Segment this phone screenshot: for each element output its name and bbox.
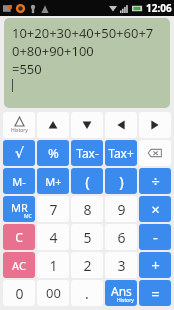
staticText: 8 [83, 200, 92, 219]
button[interactable]: = [139, 280, 171, 306]
staticText: 0+80+90+100 [12, 42, 94, 60]
button[interactable]: Ans [105, 280, 137, 306]
staticText: 1 [49, 256, 58, 275]
staticText: Tax- [76, 145, 99, 161]
button[interactable]: Up [37, 112, 69, 138]
button[interactable]: 7 [37, 196, 69, 222]
staticText: . [85, 284, 89, 303]
staticText: √ [15, 145, 24, 161]
button[interactable]: History [3, 112, 35, 138]
staticText: History [11, 127, 28, 134]
staticText: ÷ [151, 171, 160, 191]
staticText: 3 [117, 256, 126, 275]
staticText: 6 [117, 228, 126, 247]
button[interactable]: 3 [105, 252, 137, 278]
staticText: % [48, 144, 59, 162]
staticText: 10+20+30+40+50+60+7 [12, 24, 154, 42]
button[interactable]: 0 [3, 280, 35, 306]
button[interactable]: √ [3, 140, 35, 166]
button[interactable]: 1 [37, 252, 69, 278]
button[interactable]: AC [3, 252, 35, 278]
staticText: ) [119, 171, 124, 191]
button[interactable]: C [3, 224, 35, 250]
staticText: =550 [12, 60, 42, 78]
button[interactable]: 6 [105, 224, 137, 250]
staticText: MC [24, 213, 32, 220]
staticText: 4 [49, 228, 58, 247]
staticText: 0 [15, 284, 24, 303]
button[interactable]: M- [3, 168, 35, 194]
button[interactable]: Left [105, 112, 137, 138]
button[interactable]: Down [71, 112, 103, 138]
button[interactable]: Backspace [139, 140, 171, 166]
staticText: M- [12, 174, 26, 189]
staticText: Tax+ [108, 145, 134, 161]
staticText: ( [85, 171, 90, 191]
staticText: 5 [83, 228, 92, 247]
button[interactable]: + [139, 252, 171, 278]
button[interactable]: 00 [37, 280, 69, 306]
button[interactable]: × [139, 196, 171, 222]
button[interactable]: % [37, 140, 69, 166]
button[interactable]: 5 [71, 224, 103, 250]
button[interactable]: Right [139, 112, 171, 138]
button[interactable]: ( [71, 168, 103, 194]
staticText: 12:06 [146, 1, 172, 15]
staticText: + [151, 255, 160, 275]
staticText: 2 [83, 256, 92, 275]
staticText: History [117, 297, 134, 304]
staticText: 9 [117, 200, 126, 219]
staticText: MR [11, 200, 28, 215]
staticText: 7 [49, 200, 58, 219]
staticText: = [151, 283, 160, 303]
staticText: AC [12, 258, 26, 273]
button[interactable]: 4 [37, 224, 69, 250]
button[interactable]: - [139, 224, 171, 250]
button[interactable]: 9 [105, 196, 137, 222]
button[interactable]: 2 [71, 252, 103, 278]
button[interactable]: 10+20+30+40+50+60+7 [4, 18, 170, 108]
staticText: - [153, 227, 158, 247]
staticText: 00 [46, 284, 61, 302]
button[interactable]: MR [3, 196, 35, 222]
staticText: × [151, 199, 160, 219]
button[interactable]: Tax+ [105, 140, 137, 166]
button[interactable]: . [71, 280, 103, 306]
button[interactable]: ) [105, 168, 137, 194]
staticText: Ans [111, 283, 132, 299]
button[interactable]: M+ [37, 168, 69, 194]
button[interactable]: 8 [71, 196, 103, 222]
button[interactable]: ÷ [139, 168, 171, 194]
staticText: M+ [45, 174, 62, 189]
button[interactable]: Tax- [71, 140, 103, 166]
staticText: C [15, 229, 23, 245]
